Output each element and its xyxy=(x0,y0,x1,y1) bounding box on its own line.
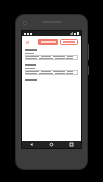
button[interactable]: Home xyxy=(41,141,61,148)
button[interactable]: Recents xyxy=(61,141,81,148)
button[interactable]: Back xyxy=(22,141,41,148)
button[interactable] xyxy=(38,39,58,45)
button[interactable] xyxy=(60,39,78,45)
button[interactable]: Menu xyxy=(25,40,30,45)
